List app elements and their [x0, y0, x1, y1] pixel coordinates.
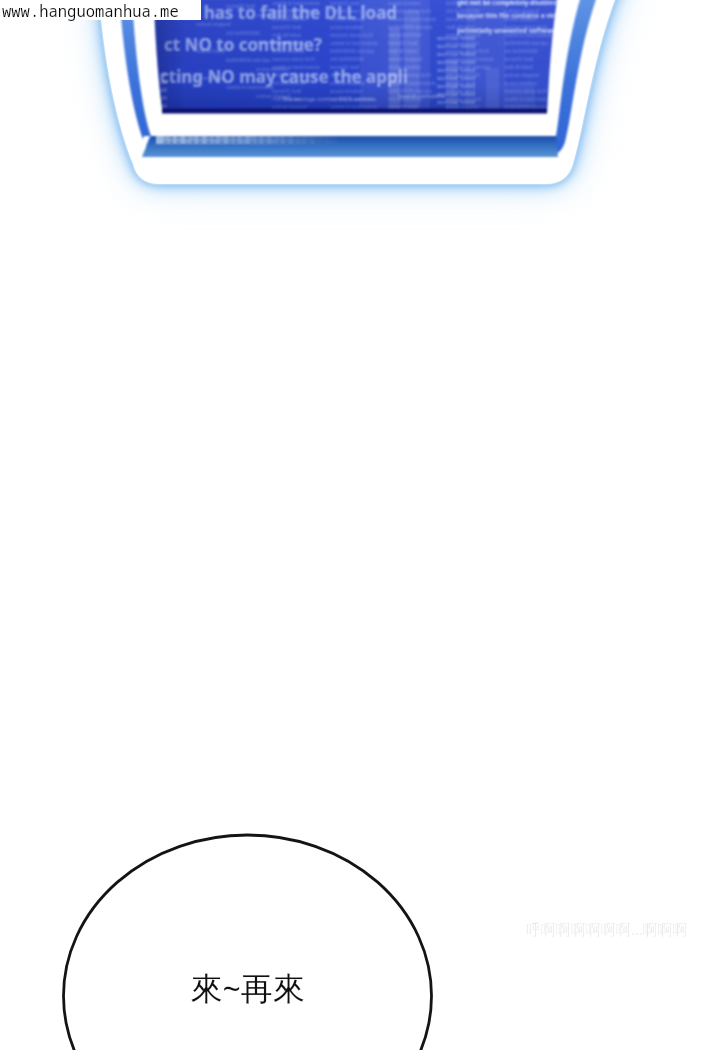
button[interactable]: Comic page, tap to continue reading — [0, 0, 720, 1050]
